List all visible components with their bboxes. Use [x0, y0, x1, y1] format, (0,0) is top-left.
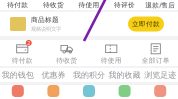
button[interactable]: 全部订单	[133, 40, 178, 66]
staticText: 浏览足迹	[144, 70, 176, 80]
staticText: 退款/售后	[145, 1, 175, 9]
button[interactable]: 我的钱包	[0, 68, 36, 82]
staticText: 待收货	[56, 56, 77, 65]
button[interactable]: 2	[0, 40, 44, 66]
button[interactable]: 待收货	[44, 40, 89, 66]
staticText: 优惠券	[41, 70, 65, 80]
button[interactable]: 优惠券	[36, 68, 71, 82]
button[interactable]: 待评价	[107, 0, 142, 10]
staticText: 立即付款	[132, 20, 160, 28]
staticText: 待使用	[101, 56, 122, 65]
button[interactable]: 钱包	[0, 85, 36, 99]
button[interactable]: 券	[36, 85, 71, 99]
button[interactable]: 待使用	[89, 40, 133, 66]
staticText: 待评价	[114, 1, 135, 9]
staticText: 待付款	[7, 1, 28, 9]
button[interactable]: 我的收藏	[107, 68, 142, 82]
button[interactable]: 退款/售后	[142, 0, 178, 10]
staticText: 商品标题	[31, 16, 59, 24]
button[interactable]: 待付款	[0, 0, 36, 10]
staticText: 待收货	[43, 1, 64, 9]
button[interactable]: 待使用	[71, 0, 107, 10]
staticText: 我的收藏	[109, 70, 141, 80]
button[interactable]: 浏览足迹	[142, 68, 178, 82]
staticText: 规格说明文字	[31, 26, 61, 32]
button[interactable]: 积分	[71, 85, 107, 99]
button[interactable]: 待收货	[36, 0, 71, 10]
staticText: 我的积分	[73, 70, 105, 80]
button[interactable]: 商品标题	[0, 12, 178, 36]
staticText: 全部订单	[142, 56, 170, 65]
staticText: 待付款	[12, 56, 33, 65]
staticText: 我的钱包	[2, 70, 34, 80]
button[interactable]: 收藏	[107, 85, 142, 99]
staticText: 待使用	[78, 1, 99, 9]
button[interactable]: 我的积分	[71, 68, 107, 82]
staticText: 2	[27, 39, 30, 46]
button[interactable]: 足迹	[142, 85, 178, 99]
